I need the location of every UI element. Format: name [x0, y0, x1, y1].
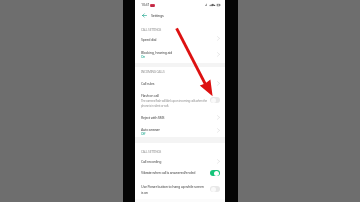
staticText: Call rules	[141, 81, 155, 86]
button[interactable]: Flash on call, off	[210, 97, 220, 103]
button[interactable]	[135, 110, 225, 124]
staticText: Blocking, hearing aid	[141, 50, 172, 55]
staticText: INCOMING CALLS	[141, 70, 165, 74]
staticText: Speed dial	[141, 37, 157, 42]
button[interactable]: Use Power button to hang up while screen…	[210, 186, 220, 192]
button[interactable]: Back	[140, 11, 149, 20]
staticText: Reject with SMS	[141, 115, 165, 120]
staticText: On	[141, 55, 146, 59]
staticText: Settings	[151, 13, 164, 18]
button[interactable]	[135, 124, 225, 137]
staticText: CALL SETTINGS	[141, 150, 162, 154]
button[interactable]	[135, 180, 225, 197]
button[interactable]	[135, 32, 225, 45]
staticText: CALL SETTINGS	[141, 28, 162, 32]
staticText: Call recording	[141, 159, 162, 164]
staticText: Vibrate when call is answered/ended	[141, 170, 196, 175]
button[interactable]	[135, 45, 225, 63]
staticText: 10:41	[141, 2, 150, 7]
button[interactable]: Vibrate when call is answered/ended, on	[210, 170, 220, 176]
button[interactable]	[135, 167, 225, 180]
staticText: Use Power button to hang up while screen…	[141, 184, 204, 195]
staticText: Auto answer	[141, 127, 160, 132]
staticText: Off	[141, 132, 146, 136]
button[interactable]	[135, 76, 225, 90]
button[interactable]	[135, 90, 225, 110]
staticText: The camera flash will blink upon incomin…	[141, 99, 207, 108]
button[interactable]	[135, 155, 225, 167]
staticText: Flash on call	[141, 93, 159, 98]
